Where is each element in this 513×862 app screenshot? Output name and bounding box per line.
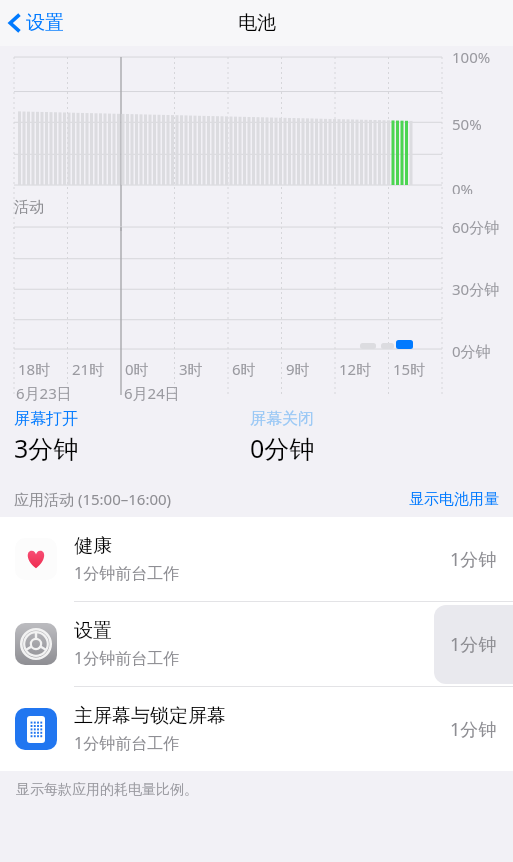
staticText: 0% xyxy=(452,179,474,194)
other: 设置 xyxy=(15,623,57,665)
staticText: 屏幕关闭 xyxy=(250,409,314,429)
staticText: 15时 xyxy=(393,359,426,379)
staticText: 9时 xyxy=(286,359,310,379)
button[interactable]: 设置 xyxy=(0,5,74,41)
staticText: 0分钟 xyxy=(250,431,315,465)
staticText: 主屏幕与锁定屏幕 xyxy=(74,704,226,728)
staticText: 0分钟 xyxy=(452,341,491,361)
staticText: 21时 xyxy=(72,359,105,379)
staticText: 100% xyxy=(452,47,491,67)
button[interactable]: 主屏幕与锁定屏幕 xyxy=(0,687,513,771)
staticText: 60分钟 xyxy=(452,217,500,237)
other: 主屏幕与锁定屏幕 xyxy=(15,708,57,750)
staticText: 30分钟 xyxy=(452,279,500,299)
staticText: 1分钟前台工作 xyxy=(74,562,180,584)
staticText: 显示电池用量 xyxy=(409,490,499,509)
staticText: 12时 xyxy=(339,359,372,379)
button[interactable]: 显示电池用量 xyxy=(409,490,499,509)
staticText: 应用活动 (15:00–16:00) xyxy=(14,489,172,509)
staticText: 1分钟前台工作 xyxy=(74,732,180,754)
button[interactable]: 设置 xyxy=(0,602,513,686)
staticText: 50% xyxy=(452,114,482,134)
staticText: 6月23日 xyxy=(16,383,72,403)
staticText: 设置 xyxy=(74,619,112,643)
staticText: 1分钟 xyxy=(450,547,497,572)
staticText: 电池 xyxy=(238,11,276,35)
staticText: 健康 xyxy=(74,534,112,558)
staticText: 6月24日 xyxy=(124,383,180,403)
staticText: 0时 xyxy=(125,359,149,379)
staticText: 设置 xyxy=(26,11,64,35)
staticText: 3时 xyxy=(179,359,203,379)
staticText: 1分钟 xyxy=(450,632,497,657)
button[interactable]: 健康 xyxy=(0,517,513,601)
staticText: 屏幕打开 xyxy=(14,409,78,429)
staticText: 显示每款应用的耗电量比例。 xyxy=(16,781,198,799)
staticText: 3分钟 xyxy=(14,431,79,465)
other: 健康 xyxy=(15,538,57,580)
staticText: 活动 xyxy=(14,198,44,217)
staticText: 1分钟 xyxy=(450,717,497,742)
staticText: 6时 xyxy=(232,359,256,379)
staticText: 1分钟前台工作 xyxy=(74,647,180,669)
staticText: 18时 xyxy=(18,359,51,379)
